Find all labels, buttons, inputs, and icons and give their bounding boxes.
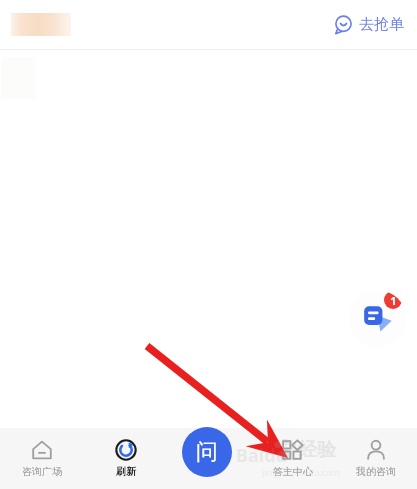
button[interactable]: 刷新 <box>84 428 168 489</box>
staticText: 1 <box>390 293 397 308</box>
button[interactable]: 问 <box>182 427 232 477</box>
staticText: 我的咨询 <box>356 465 396 478</box>
button[interactable]: 答主中心 <box>251 428 334 489</box>
button[interactable]: 咨询广场 <box>0 428 84 489</box>
button[interactable]: 去抢单 <box>329 10 409 39</box>
button[interactable]: 我的咨询 <box>334 428 417 489</box>
staticText: jingyan.baidu.com <box>262 466 340 478</box>
staticText: 刷新 <box>116 465 136 478</box>
button[interactable]: Messages <box>349 290 406 347</box>
staticText: 咨询广场 <box>22 465 62 478</box>
staticText: Baidu <box>236 443 288 468</box>
staticText: 去抢单 <box>359 15 404 34</box>
staticText: 问 <box>196 438 218 466</box>
staticText: 答主中心 <box>273 465 313 478</box>
staticText: 经验 <box>298 438 336 462</box>
